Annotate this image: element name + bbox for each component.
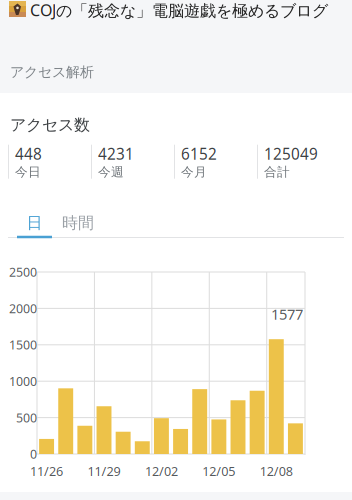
- staticText: 1000: [9, 373, 37, 390]
- staticText: 6152: [181, 143, 217, 164]
- staticText: 2000: [9, 300, 37, 317]
- staticText: 今日: [15, 164, 41, 180]
- staticText: アクセス数: [10, 115, 90, 135]
- staticText: 2500: [9, 264, 37, 280]
- staticText: 1577: [271, 304, 303, 324]
- staticText: 0: [30, 446, 37, 462]
- button[interactable]: 時間: [52, 208, 104, 237]
- staticText: 4231: [98, 143, 134, 164]
- staticText: 11/29: [87, 462, 120, 480]
- staticText: 合計: [264, 164, 290, 180]
- staticText: 今週: [98, 164, 124, 180]
- staticText: 12/08: [260, 462, 293, 480]
- staticText: 448: [15, 143, 42, 164]
- staticText: 12/05: [202, 462, 235, 480]
- staticText: 1500: [9, 336, 37, 353]
- button[interactable]: 日: [17, 208, 52, 237]
- staticText: 11/26: [30, 462, 63, 480]
- staticText: 500: [16, 409, 37, 426]
- staticText: 時間: [62, 213, 94, 233]
- staticText: 125049: [264, 143, 318, 164]
- staticText: 日: [26, 213, 42, 233]
- staticText: 12/02: [145, 462, 178, 480]
- staticText: COJの「残念な」電脳遊戯を極めるブログ: [30, 0, 328, 21]
- staticText: 今月: [181, 164, 207, 180]
- staticText: アクセス解析: [10, 63, 94, 81]
